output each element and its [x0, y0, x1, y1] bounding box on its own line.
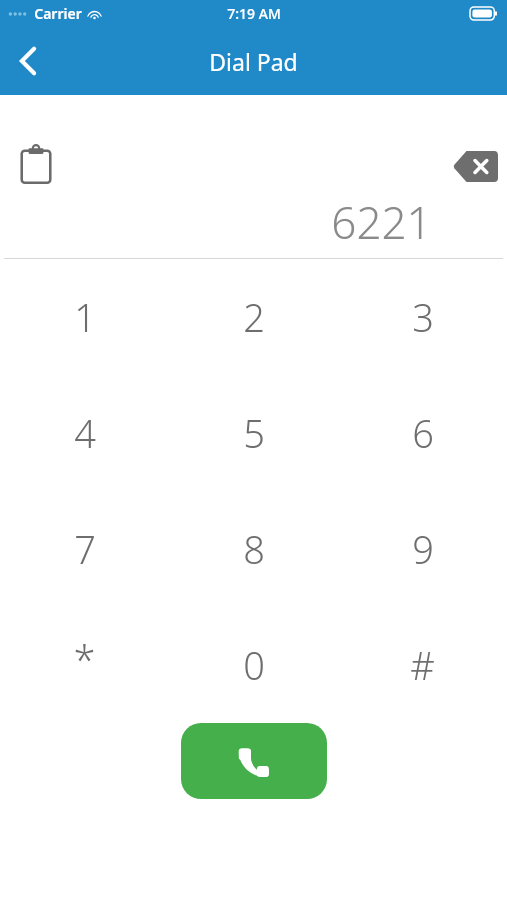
- staticText: 9: [412, 523, 434, 575]
- staticText: 7: [74, 523, 96, 575]
- staticText: 3: [412, 291, 434, 343]
- staticText: Carrier: [34, 4, 82, 23]
- staticText: #: [410, 639, 435, 691]
- staticText: 6221: [331, 192, 432, 252]
- button[interactable]: Back: [0, 33, 56, 89]
- button[interactable]: 2: [169, 259, 338, 375]
- staticText: Dial Pad: [209, 46, 298, 77]
- staticText: 4: [74, 407, 96, 459]
- button[interactable]: Paste from clipboard: [8, 141, 64, 191]
- staticText: 7:19 AM: [227, 4, 281, 23]
- staticText: 8: [243, 523, 265, 575]
- staticText: 6: [412, 407, 434, 459]
- button[interactable]: 6: [338, 375, 507, 491]
- staticText: *: [73, 632, 96, 686]
- button[interactable]: 4: [0, 375, 169, 491]
- staticText: 5: [243, 407, 265, 459]
- staticText: 0: [243, 639, 265, 691]
- button[interactable]: 0: [169, 607, 338, 723]
- button[interactable]: *: [0, 607, 169, 723]
- button[interactable]: 5: [169, 375, 338, 491]
- staticText: 2: [243, 291, 265, 343]
- button[interactable]: 9: [338, 491, 507, 607]
- button[interactable]: 3: [338, 259, 507, 375]
- button[interactable]: Call: [181, 723, 327, 799]
- button[interactable]: #: [338, 607, 507, 723]
- button[interactable]: 8: [169, 491, 338, 607]
- button[interactable]: 7: [0, 491, 169, 607]
- staticText: 1: [74, 291, 96, 343]
- button[interactable]: Backspace: [447, 141, 503, 191]
- button[interactable]: 1: [0, 259, 169, 375]
